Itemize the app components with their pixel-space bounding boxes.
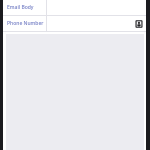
button[interactable]: Pick contact xyxy=(134,19,143,28)
button[interactable]: Phone Number xyxy=(3,16,146,31)
button[interactable]: Email Body xyxy=(3,0,146,15)
staticText: Email Body xyxy=(7,4,34,11)
staticText: Phone Number xyxy=(7,20,44,27)
